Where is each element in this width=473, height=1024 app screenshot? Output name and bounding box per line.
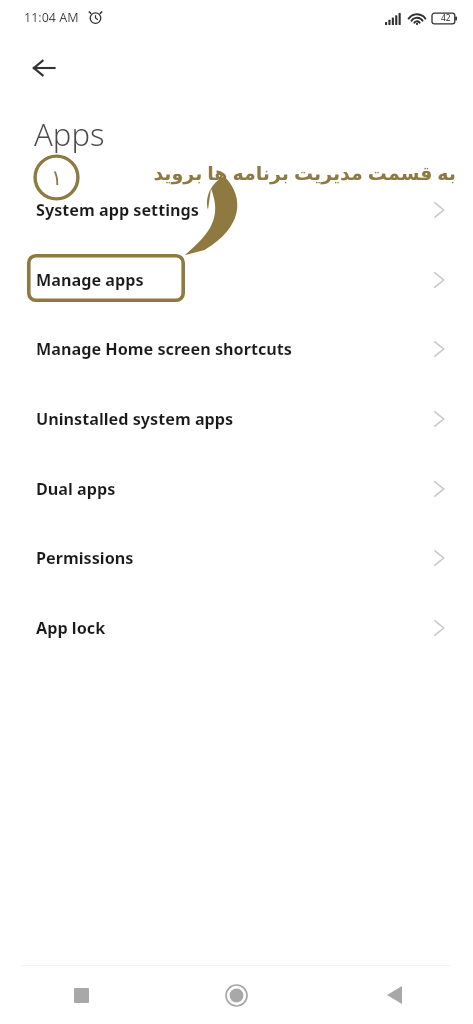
staticText: Manage Home screen shortcuts	[36, 338, 434, 360]
button[interactable]: Dual apps	[0, 454, 473, 524]
button[interactable]: Manage apps	[0, 245, 473, 315]
staticText: 42	[441, 12, 451, 24]
staticText: Dual apps	[36, 478, 434, 500]
button[interactable]: Back	[20, 44, 68, 92]
staticText: Apps	[34, 113, 105, 155]
button[interactable]: Back	[315, 966, 473, 1024]
button[interactable]: Uninstalled system apps	[0, 384, 473, 454]
button[interactable]: App lock	[0, 593, 473, 663]
staticText: به قسمت مدیریت برنامه ها بروید	[84, 160, 456, 186]
button[interactable]: Recents	[0, 966, 157, 1024]
button[interactable]: System app settings	[0, 175, 473, 245]
button[interactable]: Home	[157, 966, 315, 1024]
staticText: System app settings	[36, 199, 434, 221]
button[interactable]: Permissions	[0, 523, 473, 593]
staticText: Manage apps	[36, 269, 434, 291]
staticText: Permissions	[36, 547, 434, 569]
staticText: 11:04 AM	[24, 9, 79, 26]
button[interactable]: Manage Home screen shortcuts	[0, 314, 473, 384]
staticText: ١	[51, 166, 63, 190]
staticText: App lock	[36, 617, 434, 639]
staticText: Uninstalled system apps	[36, 408, 434, 430]
